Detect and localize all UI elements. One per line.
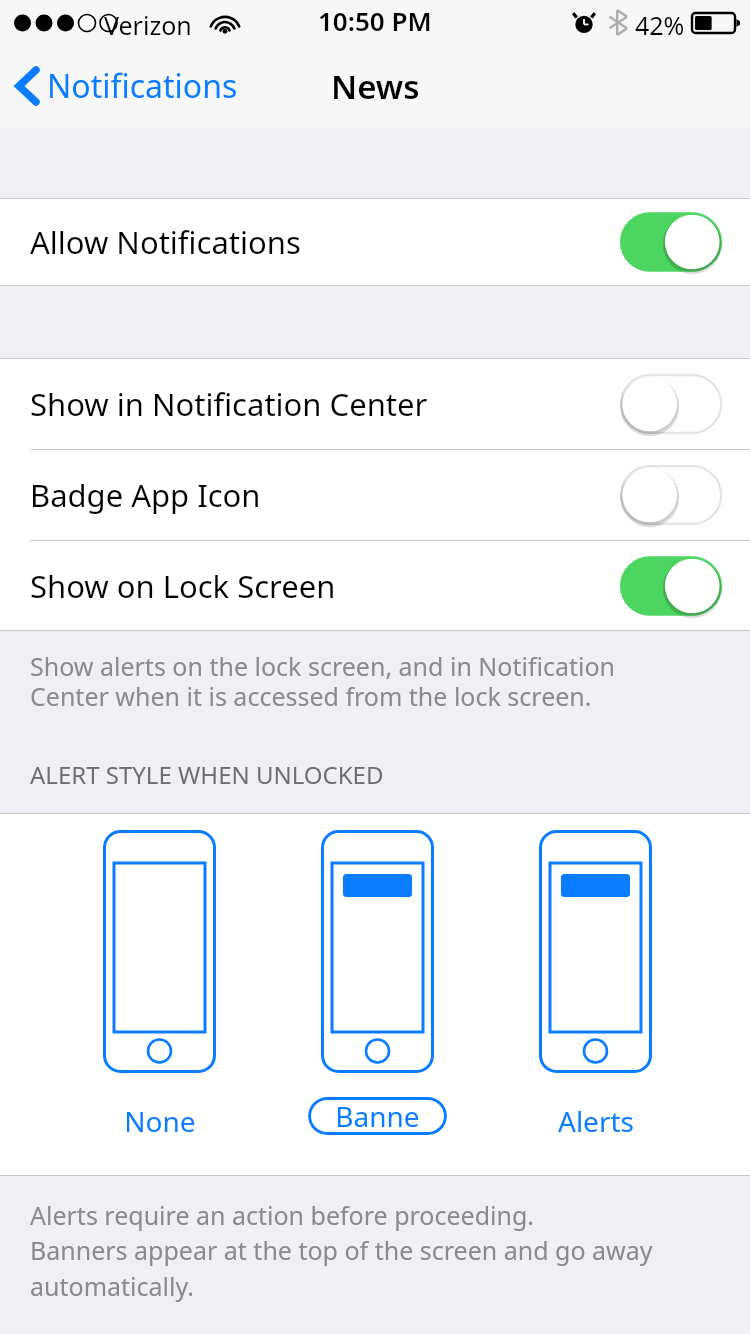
button[interactable]: None xyxy=(89,830,230,1140)
button[interactable]: Allow Notifications xyxy=(0,199,750,285)
button[interactable]: On xyxy=(620,555,722,617)
staticText: Alerts xyxy=(558,1102,634,1140)
staticText: Alerts require an action before proceedi… xyxy=(30,1198,653,1304)
staticText: Notifications xyxy=(47,64,238,108)
staticText: Show in Notification Center xyxy=(30,383,620,425)
button[interactable]: Badge App Icon xyxy=(0,450,750,540)
staticText: Allow Notifications xyxy=(30,221,620,263)
staticText: 10:50 PM xyxy=(318,3,432,38)
staticText: Show alerts on the lock screen, and in N… xyxy=(30,649,616,714)
button[interactable]: Show in Notification Center xyxy=(0,359,750,449)
staticText: ALERT STYLE WHEN UNLOCKED xyxy=(30,758,384,791)
button[interactable]: Banners xyxy=(307,830,448,1136)
staticText: Verizon xyxy=(104,8,192,42)
button[interactable]: Notifications xyxy=(0,56,250,116)
staticText: Show on Lock Screen xyxy=(30,565,620,607)
staticText: Banners xyxy=(334,1097,421,1135)
button[interactable]: Show on Lock Screen xyxy=(0,541,750,630)
staticText: 42% xyxy=(635,8,685,42)
staticText: News xyxy=(331,64,420,109)
button[interactable]: On xyxy=(620,211,722,273)
staticText: None xyxy=(124,1102,196,1140)
button[interactable]: Off xyxy=(620,373,722,435)
button[interactable]: Off xyxy=(620,464,722,526)
button[interactable]: Alerts xyxy=(525,830,666,1140)
staticText: Badge App Icon xyxy=(30,474,620,516)
